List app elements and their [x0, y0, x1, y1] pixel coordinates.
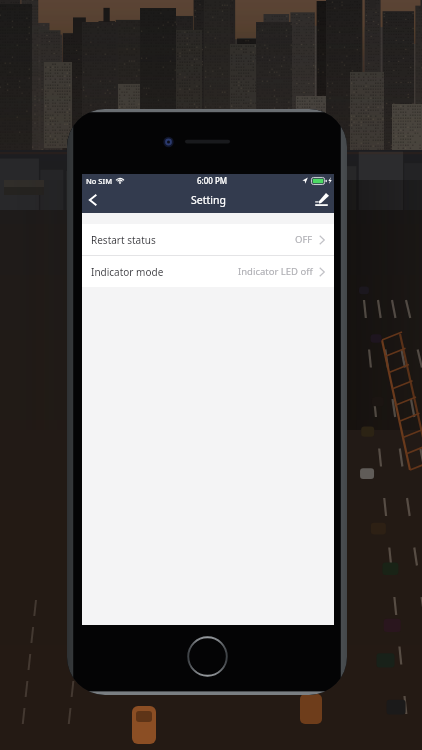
staticText: Indicator LED off — [238, 265, 313, 278]
button[interactable]: Edit — [308, 187, 334, 213]
staticText: Setting — [191, 193, 226, 207]
staticText: Indicator mode — [91, 265, 164, 279]
button[interactable]: Restart status — [82, 224, 334, 255]
staticText: No SIM — [86, 176, 113, 186]
button[interactable]: Indicator mode — [82, 256, 334, 287]
staticText: Restart status — [91, 233, 156, 247]
button[interactable]: Back — [82, 187, 104, 213]
staticText: 6:00 PM — [197, 175, 228, 186]
staticText: OFF — [295, 233, 313, 246]
